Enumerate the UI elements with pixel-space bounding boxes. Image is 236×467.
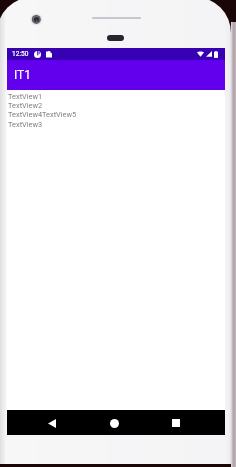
staticText: TextView4 bbox=[8, 110, 43, 119]
button[interactable]: Back bbox=[43, 414, 61, 432]
staticText: TextView2 bbox=[8, 101, 43, 110]
staticText: 12:50 bbox=[12, 50, 29, 58]
button[interactable]: TextView1 bbox=[7, 92, 225, 101]
button[interactable]: IT1 bbox=[7, 60, 225, 90]
button[interactable]: TextView2 bbox=[7, 101, 225, 110]
button[interactable]: Recent apps bbox=[167, 414, 185, 432]
staticText: TextView1 bbox=[8, 92, 43, 101]
staticText: TextView3 bbox=[8, 120, 43, 129]
button[interactable]: TextView4 bbox=[7, 110, 225, 119]
button[interactable]: TextView3 bbox=[7, 120, 225, 129]
button[interactable]: Home bbox=[105, 414, 123, 432]
staticText: TextView5 bbox=[42, 110, 77, 119]
staticText: IT1 bbox=[14, 68, 31, 82]
